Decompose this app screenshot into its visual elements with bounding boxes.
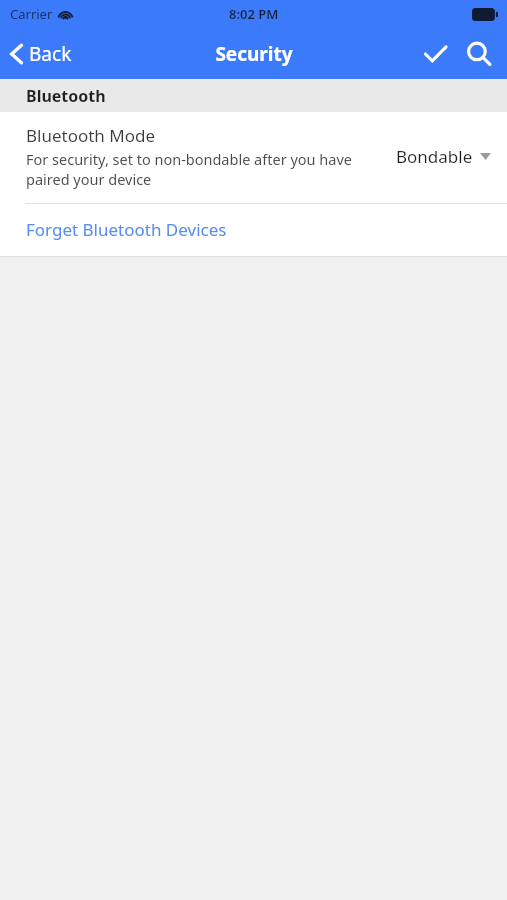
staticText: Bluetooth Mode [26, 124, 156, 147]
button[interactable]: Bluetooth Mode [0, 112, 507, 203]
button[interactable]: Back [0, 33, 84, 75]
staticText: Back [29, 41, 72, 67]
staticText: Bluetooth [26, 85, 106, 107]
staticText: Carrier [10, 5, 53, 23]
staticText: For security, set to non-bondable after … [26, 149, 386, 189]
staticText: 8:02 PM [229, 5, 279, 23]
staticText: Forget Bluetooth Devices [26, 218, 227, 241]
button[interactable]: Confirm [413, 32, 457, 76]
staticText: Bondable [396, 145, 473, 168]
button[interactable]: Search [457, 32, 501, 76]
staticText: Security [215, 41, 293, 67]
button[interactable]: Forget Bluetooth Devices [0, 204, 507, 256]
